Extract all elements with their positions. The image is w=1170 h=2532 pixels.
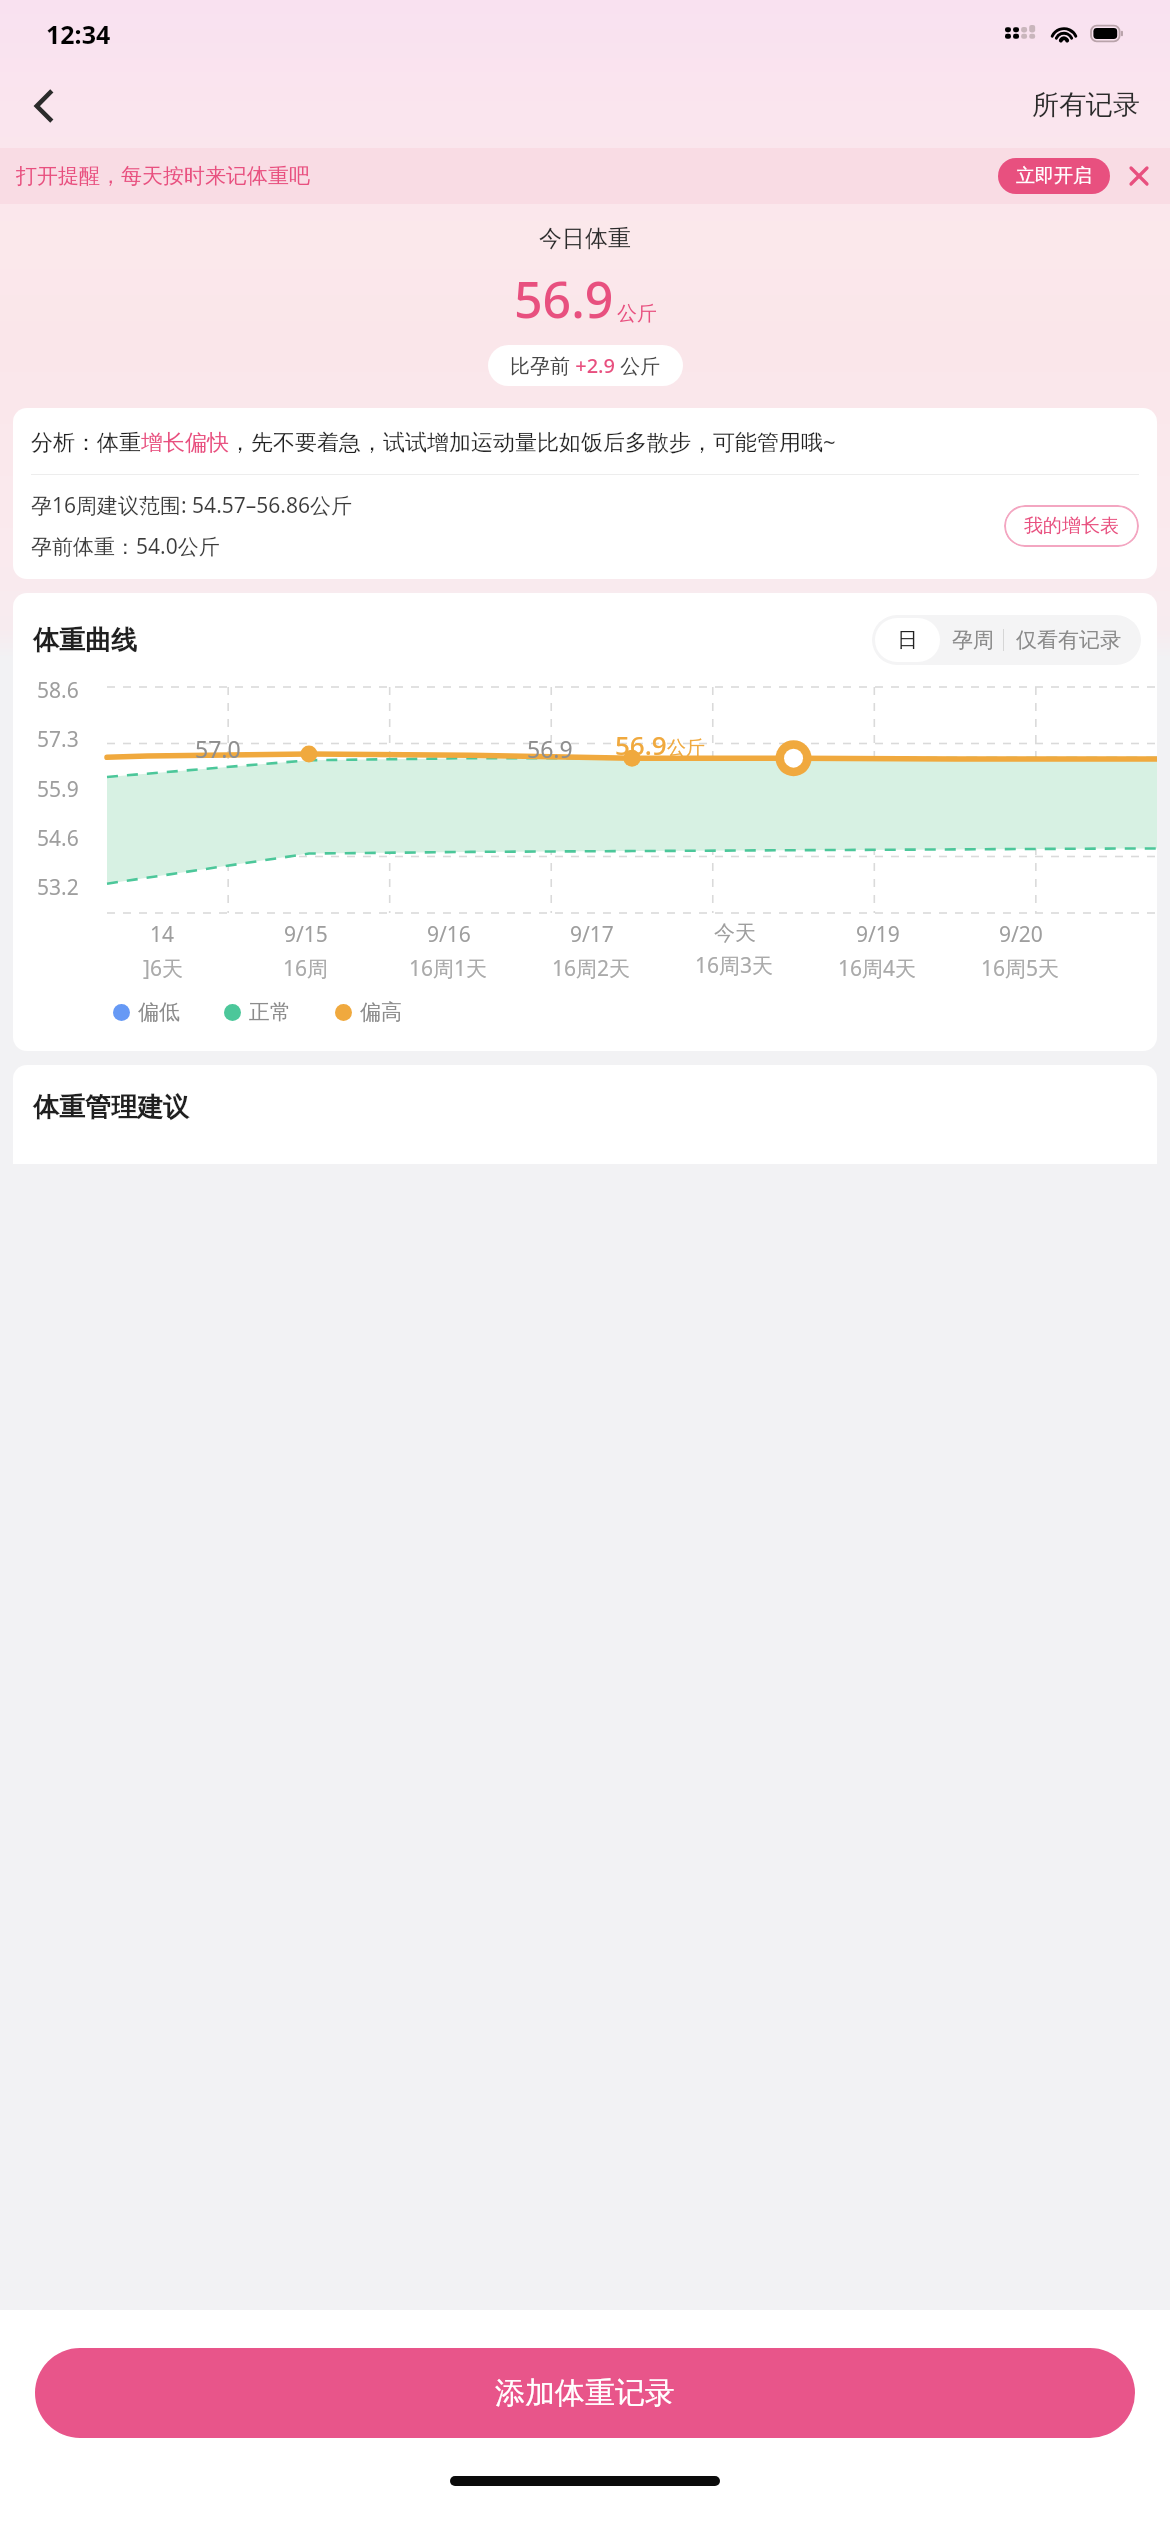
- staticText: 仅看有记录: [1016, 627, 1121, 653]
- staticText: 9/16: [427, 920, 471, 949]
- button[interactable]: 正常: [224, 999, 291, 1025]
- button[interactable]: 立即开启: [998, 158, 1110, 194]
- button[interactable]: 偏高: [335, 999, 402, 1025]
- staticText: 正常: [249, 999, 291, 1025]
- staticText: 今日体重: [539, 224, 631, 253]
- staticText: 16周2天: [552, 954, 631, 983]
- staticText: 16周4天: [838, 954, 917, 983]
- staticText: 孕周: [952, 627, 994, 653]
- staticText: 56.9: [615, 727, 667, 762]
- staticText: 立即开启: [1016, 164, 1092, 188]
- staticText: 9/15: [284, 920, 328, 949]
- staticText: 公斤: [667, 736, 705, 760]
- staticText: 57.3: [37, 725, 79, 754]
- staticText: 体重管理建议: [33, 1091, 189, 1124]
- staticText: 9/20: [999, 920, 1043, 949]
- staticText: 所有记录: [1032, 88, 1140, 122]
- button[interactable]: 体重管理建议: [13, 1065, 1157, 1164]
- button[interactable]: 添加体重记录: [35, 2348, 1135, 2438]
- staticText: 比孕前 +2.9 公斤: [510, 352, 661, 379]
- staticText: 54.6: [37, 824, 79, 853]
- staticText: 55.9: [37, 775, 79, 804]
- staticText: 56.9: [527, 733, 573, 764]
- button[interactable]: 孕周: [943, 616, 1003, 664]
- staticText: 孕前体重：54.0公斤: [31, 532, 220, 561]
- staticText: 58.6: [37, 676, 79, 705]
- staticText: 9/19: [856, 920, 900, 949]
- button[interactable]: Close: [1122, 159, 1156, 193]
- staticText: 16周3天: [695, 951, 774, 980]
- staticText: 今天: [714, 920, 756, 946]
- staticText: 日: [897, 627, 918, 653]
- staticText: 孕16周建议范围: 54.57–56.86公斤: [31, 491, 352, 520]
- staticText: 16周: [283, 954, 329, 983]
- staticText: 公斤: [617, 301, 657, 326]
- staticText: 偏高: [360, 999, 402, 1025]
- staticText: 16周5天: [981, 954, 1060, 983]
- staticText: 16周1天: [409, 954, 488, 983]
- staticText: ]6天: [143, 954, 183, 983]
- staticText: 偏低: [138, 999, 180, 1025]
- staticText: 打开提醒，每天按时来记体重吧: [16, 163, 310, 189]
- button[interactable]: 日: [875, 618, 940, 662]
- staticText: 56.9: [514, 265, 614, 333]
- staticText: 57.0: [195, 733, 241, 764]
- staticText: 12:34: [46, 17, 111, 51]
- button[interactable]: 比孕前 +2.9 公斤: [488, 345, 683, 386]
- button[interactable]: Back: [18, 79, 70, 131]
- button[interactable]: 仅看有记录: [1004, 616, 1141, 664]
- staticText: 9/17: [570, 920, 614, 949]
- button[interactable]: 我的增长表: [1004, 505, 1139, 547]
- staticText: 14: [150, 920, 175, 949]
- staticText: 我的增长表: [1024, 514, 1119, 538]
- staticText: 添加体重记录: [495, 2374, 675, 2412]
- button[interactable]: 分析：体重增长偏快，先不要着急，试试增加运动量比如饭后多散步，可能管用哦~: [13, 408, 1157, 579]
- staticText: 53.2: [37, 873, 79, 902]
- staticText: 体重曲线: [33, 624, 137, 657]
- staticText: 分析：体重增长偏快，先不要着急，试试增加运动量比如饭后多散步，可能管用哦~: [31, 426, 836, 456]
- button[interactable]: 偏低: [113, 999, 180, 1025]
